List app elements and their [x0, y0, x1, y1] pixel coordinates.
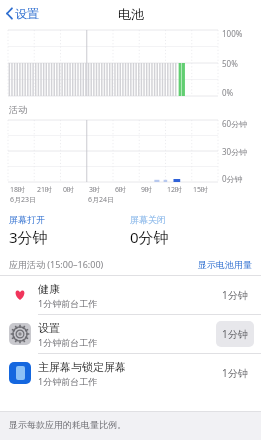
staticText: 3时 — [89, 185, 101, 195]
button[interactable]: 健康 — [0, 276, 261, 314]
staticText: 1分钟 — [222, 288, 248, 302]
staticText: 应用活动 (15:00–16:00) — [9, 258, 198, 270]
staticText: 12时 — [167, 185, 183, 195]
button[interactable]: 显示电池用量 — [198, 259, 252, 270]
staticText: 活动 — [9, 104, 27, 115]
staticText: 1分钟前台工作 — [38, 336, 98, 348]
staticText: 设置 — [15, 6, 39, 21]
staticText: 0分钟 — [130, 227, 169, 247]
staticText: 15时 — [193, 185, 209, 195]
staticText: 3分钟 — [9, 227, 48, 247]
staticText: 1分钟 — [222, 366, 248, 380]
staticText: 设置 — [38, 321, 60, 335]
staticText: 6月23日 — [10, 195, 37, 205]
staticText: 显示电池用量 — [198, 259, 252, 270]
staticText: 主屏幕与锁定屏幕 — [38, 360, 126, 374]
staticText: 0时 — [63, 185, 75, 195]
staticText: 30分钟 — [222, 146, 248, 157]
staticText: 100% — [222, 28, 243, 39]
staticText: 18时 — [10, 185, 26, 195]
staticText: 屏幕打开 — [9, 214, 45, 225]
staticText: 0% — [222, 87, 234, 98]
staticText: 电池 — [118, 6, 144, 22]
staticText: 6时 — [115, 185, 127, 195]
staticText: 0分钟 — [222, 173, 243, 184]
other: 健康 — [9, 284, 31, 306]
staticText: 9时 — [141, 185, 153, 195]
button[interactable]: 设置 — [0, 315, 261, 353]
staticText: 1分钟前台工作 — [38, 297, 98, 309]
button[interactable]: 设置 — [3, 2, 42, 25]
button[interactable]: 主屏幕与锁定屏幕 — [0, 354, 261, 392]
other: 设置 — [9, 323, 31, 345]
staticText: 显示每款应用的耗电量比例。 — [9, 419, 126, 430]
staticText: 50% — [222, 58, 238, 69]
staticText: 1分钟前台工作 — [38, 375, 98, 387]
other: 主屏幕与锁定屏幕 — [9, 362, 31, 384]
staticText: 6月24日 — [88, 195, 115, 205]
staticText: 健康 — [38, 282, 60, 296]
staticText: 60分钟 — [222, 118, 248, 129]
staticText: 21时 — [37, 185, 53, 195]
staticText: 屏幕关闭 — [130, 214, 166, 225]
staticText: 1分钟 — [222, 327, 248, 341]
